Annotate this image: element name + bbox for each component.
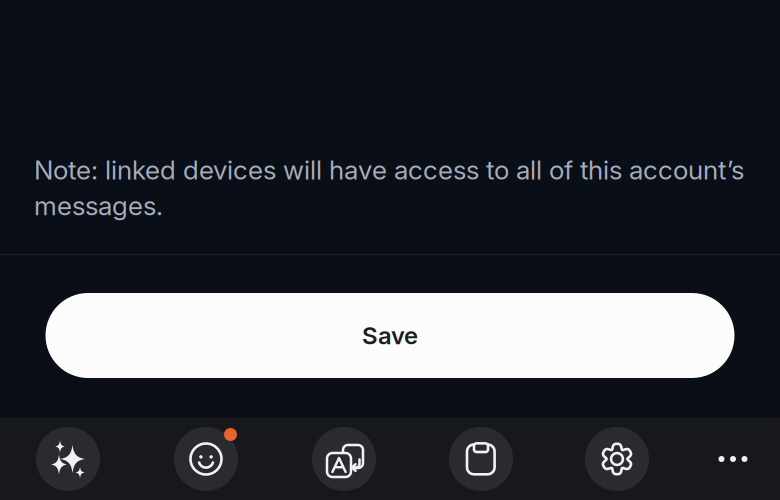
button[interactable]: Clipboard bbox=[449, 427, 513, 491]
staticText: Note: linked devices will have access to… bbox=[34, 154, 744, 222]
staticText: Save bbox=[362, 321, 418, 350]
button[interactable]: Save bbox=[45, 293, 734, 378]
button[interactable]: Stickers bbox=[174, 427, 238, 491]
button[interactable]: More bbox=[711, 437, 755, 481]
button[interactable]: Translate bbox=[312, 427, 376, 491]
button[interactable]: Settings bbox=[585, 427, 649, 491]
button[interactable]: AI bbox=[36, 427, 100, 491]
